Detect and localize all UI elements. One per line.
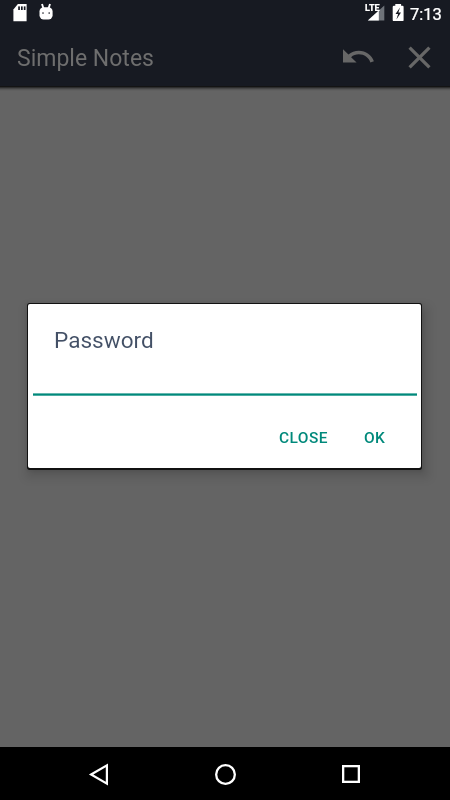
staticText: 7:13 — [410, 5, 442, 24]
button[interactable]: Home — [201, 750, 249, 798]
button[interactable]: Close — [397, 36, 441, 78]
button[interactable]: Password — [33, 316, 417, 400]
button[interactable]: CLOSE — [265, 420, 342, 456]
staticText: Simple Notes — [17, 45, 154, 72]
staticText: LTE — [365, 3, 380, 14]
staticText: Password — [54, 327, 154, 353]
button[interactable]: Back — [75, 750, 123, 798]
button[interactable]: OK — [350, 420, 400, 456]
button[interactable]: Undo — [335, 35, 381, 77]
staticText: CLOSE — [279, 429, 328, 447]
staticText: OK — [364, 429, 386, 447]
button[interactable]: Recents — [327, 750, 375, 798]
